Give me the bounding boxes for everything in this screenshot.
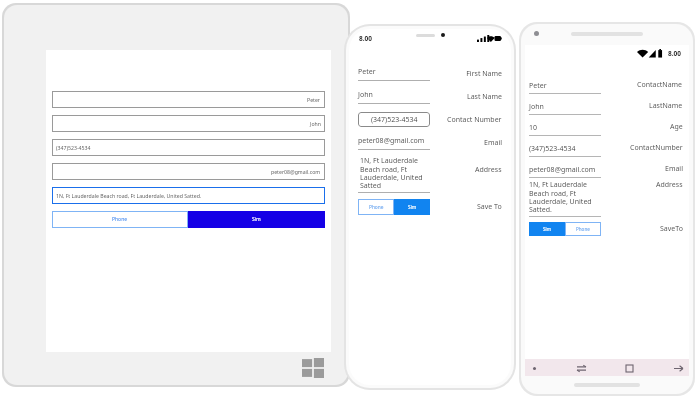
staticText: Sim [408,204,417,211]
staticText: Phone [112,216,128,223]
staticText: 8.00 [668,49,681,58]
staticText: Phone [369,204,384,211]
staticText: Sim [543,226,552,232]
button[interactable]: Sim [394,199,430,215]
staticText: 1N, Ft Lauderdale Beach road, Ft Lauderd… [56,192,202,199]
staticText: Save To [477,202,502,212]
staticText: 1N, Ft Lauderdale Beach road, Ft Lauderd… [529,180,601,214]
button[interactable]: 1N, Ft Lauderdale Beach road, Ft Lauderd… [52,187,325,204]
button[interactable]: Peter [358,62,430,85]
button[interactable]: Back [574,361,588,375]
staticText: (347)523-4534 [371,115,418,125]
staticText: Peter [529,81,547,91]
button[interactable]: 1N, Ft Lauderdale Beach road, Ft Lauderd… [529,180,601,217]
button[interactable]: John [52,115,325,132]
other: Windows [302,358,324,378]
staticText: Contact Number [447,115,502,125]
staticText: Last Name [466,92,502,102]
staticText: Email [484,138,502,148]
button[interactable]: 1N, Ft Lauderdale Beach road, Ft Lauderd… [358,156,430,193]
staticText: ContactNumber [630,143,683,153]
button[interactable]: (347)523-4534 [52,139,325,156]
staticText: Email [665,164,683,174]
button[interactable]: 10 [529,117,601,138]
staticText: 1N, Ft Lauderdale Beach road, Ft Lauderd… [360,156,430,190]
staticText: First Name [466,69,502,79]
button[interactable]: Phone [565,222,601,236]
staticText: (347)523-4534 [529,144,576,154]
staticText: (347)523-4534 [56,144,91,151]
staticText: peter08@gmail.com [529,165,596,175]
staticText: Age [670,122,683,132]
staticText: Address [656,180,683,190]
staticText: 10 [529,123,538,133]
button[interactable]: Sim [529,222,565,236]
staticText: Peter [358,67,376,77]
staticText: Sim [252,216,261,223]
staticText: peter08@gmail.com [271,168,321,175]
button[interactable]: Sim [188,211,325,228]
button[interactable]: Peter [52,91,325,108]
button[interactable]: Phone [358,199,394,215]
staticText: ContactName [637,80,683,90]
staticText: Address [475,165,502,175]
staticText: LastName [649,101,683,111]
button[interactable]: Home [622,361,636,375]
button[interactable]: John [529,96,601,117]
button[interactable]: (347)523-4534 [529,138,601,159]
button[interactable]: Phone [52,211,188,228]
button[interactable]: (347)523-4534 [358,112,430,127]
button[interactable]: peter08@gmail.com [529,159,601,180]
button[interactable]: peter08@gmail.com [52,163,325,180]
staticText: peter08@gmail.com [358,136,425,146]
button[interactable]: Forward [671,361,685,375]
staticText: John [529,102,544,112]
button[interactable]: Dot [529,363,539,373]
staticText: John [358,90,373,100]
staticText: SaveTo [660,224,683,234]
button[interactable]: John [358,85,430,108]
staticText: Phone [576,226,590,232]
button[interactable]: Peter [529,75,601,96]
staticText: John [310,120,321,127]
staticText: Peter [307,96,321,103]
staticText: 8.00 [359,34,372,43]
button[interactable]: peter08@gmail.com [358,131,430,154]
